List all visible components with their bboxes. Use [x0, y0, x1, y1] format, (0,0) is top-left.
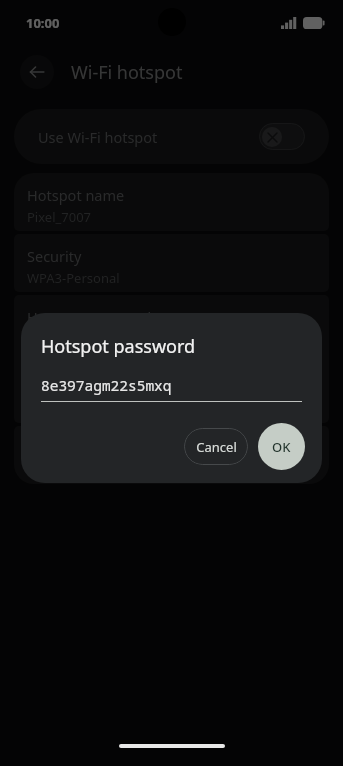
staticText: Use Wi-Fi hotspot	[38, 127, 158, 147]
staticText: Off	[27, 461, 47, 479]
staticText: 8e397agm22s5mxq	[27, 330, 147, 348]
staticText: Hotspot password	[41, 334, 196, 359]
staticText: Hotspot name	[27, 185, 125, 205]
staticText: Hotspot password	[27, 307, 152, 327]
button[interactable]: Instant hotspot	[14, 426, 329, 484]
staticText: OK	[272, 438, 291, 456]
staticText: 8e397agm22s5mxq	[41, 375, 172, 395]
staticText: WPA3-Personal	[27, 269, 120, 287]
button[interactable]: Hotspot password	[14, 295, 329, 423]
staticText: Security	[27, 246, 82, 266]
staticText: Wi-Fi hotspot	[71, 60, 183, 85]
staticText: 10:00	[26, 14, 60, 32]
button[interactable]: Cancel	[184, 428, 248, 465]
button[interactable]: OK	[258, 423, 305, 470]
button[interactable]: Use Wi-Fi hotspot toggle	[259, 123, 305, 150]
staticText: Pixel_7007	[27, 208, 92, 226]
button[interactable]: Security	[14, 234, 329, 292]
button[interactable]: 8e397agm22s5mxq	[41, 375, 302, 402]
button[interactable]: Use Wi-Fi hotspot	[14, 109, 329, 164]
button[interactable]: Hotspot name	[14, 173, 329, 231]
staticText: Cancel	[196, 438, 237, 456]
button[interactable]: Back	[20, 55, 54, 89]
